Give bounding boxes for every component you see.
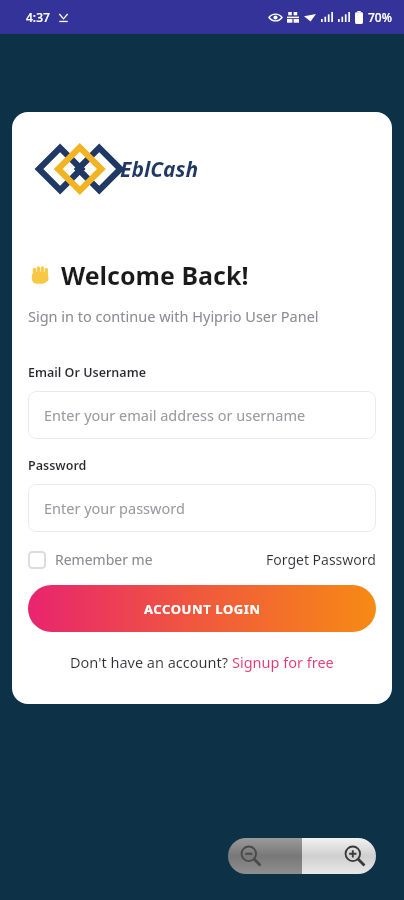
staticText: Forget Password <box>266 550 376 569</box>
staticText: EblCash <box>120 155 199 184</box>
button[interactable]: Zoom in <box>302 838 376 874</box>
button[interactable]: ACCOUNT LOGIN <box>28 585 376 632</box>
staticText: Welcome Back! <box>61 258 249 292</box>
button[interactable]: Forget Password <box>266 550 376 569</box>
staticText: Sign in to continue with Hyiprio User Pa… <box>28 306 319 326</box>
staticText: Enter your email address or username <box>44 405 306 425</box>
button[interactable]: Remember me <box>28 550 153 569</box>
staticText: Password <box>28 457 87 474</box>
staticText: Signup for free <box>232 652 334 672</box>
staticText: Enter your password <box>44 498 185 518</box>
staticText: Don't have an account? <box>70 652 232 672</box>
button[interactable]: Signup for free <box>232 652 334 672</box>
staticText: Remember me <box>55 550 153 569</box>
button[interactable]: Zoom out <box>228 838 302 874</box>
button[interactable]: Enter your password <box>28 484 376 532</box>
staticText: Email Or Username <box>28 364 146 381</box>
button[interactable]: Enter your email address or username <box>28 391 376 439</box>
staticText: 4:37 <box>26 9 50 25</box>
staticText: ACCOUNT LOGIN <box>144 600 261 618</box>
staticText: 70% <box>368 9 392 25</box>
